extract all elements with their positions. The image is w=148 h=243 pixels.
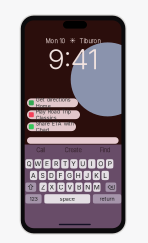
- button[interactable]: ⌫: [105, 182, 116, 192]
- staticText: 9:41: [48, 42, 98, 76]
- staticText: Play Road Trip Classics: [36, 108, 71, 121]
- button[interactable]: space: [44, 194, 90, 203]
- staticText: T: [63, 160, 67, 168]
- button[interactable]: H: [75, 171, 82, 180]
- button[interactable]: B: [75, 182, 83, 192]
- button[interactable]: Share ETA with Chad: [27, 122, 76, 131]
- button[interactable]: J: [84, 171, 91, 180]
- button[interactable]: 123: [25, 194, 42, 203]
- button[interactable]: W: [34, 159, 42, 168]
- button[interactable]: I: [88, 159, 95, 168]
- staticText: C: [58, 183, 63, 191]
- staticText: S: [40, 171, 44, 179]
- staticText: N: [85, 183, 90, 191]
- button[interactable]: Play Road Trip Classics: [27, 110, 80, 119]
- staticText: O: [98, 160, 103, 168]
- button[interactable]: A: [30, 171, 37, 180]
- button[interactable]: K: [92, 171, 100, 180]
- staticText: ⌫: [107, 183, 115, 191]
- button[interactable]: D: [48, 171, 55, 180]
- staticText: R: [54, 160, 58, 168]
- staticText: K: [94, 171, 98, 179]
- button[interactable]: ⇧: [25, 182, 36, 192]
- staticText: G: [67, 171, 72, 179]
- staticText: Mon 10 ☀ Tiburon: [45, 37, 100, 45]
- button[interactable]: O: [97, 159, 104, 168]
- staticText: H: [76, 171, 81, 179]
- button[interactable]: U: [79, 159, 86, 168]
- staticText: B: [77, 183, 81, 191]
- staticText: I: [91, 160, 93, 168]
- staticText: P: [108, 160, 112, 168]
- staticText: L: [103, 171, 107, 179]
- button[interactable]: P: [106, 159, 113, 168]
- button[interactable]: V: [66, 182, 74, 192]
- button[interactable]: Q: [25, 159, 33, 168]
- staticText: Z: [41, 183, 45, 191]
- staticText: Share ETA with Chad: [36, 120, 74, 133]
- button[interactable]: return: [93, 194, 121, 203]
- staticText: F: [58, 171, 62, 179]
- staticText: ⇧: [27, 183, 34, 191]
- staticText: M: [94, 183, 100, 191]
- staticText: U: [80, 160, 85, 168]
- button[interactable]: Get directions Home: [27, 98, 78, 107]
- staticText: Call: [36, 146, 45, 154]
- button[interactable]: E: [43, 159, 51, 168]
- staticText: 123: [29, 196, 37, 202]
- staticText: J: [85, 171, 89, 179]
- staticText: Find: [100, 146, 111, 154]
- button[interactable]: X: [48, 182, 56, 192]
- button[interactable]: L: [101, 171, 109, 180]
- staticText: space: [60, 196, 75, 202]
- button[interactable]: C: [57, 182, 65, 192]
- staticText: W: [34, 160, 41, 168]
- staticText: return: [100, 196, 115, 202]
- button[interactable]: Y: [70, 159, 78, 168]
- button[interactable]: Z: [39, 182, 47, 192]
- staticText: Create: [65, 146, 82, 154]
- staticText: E: [45, 160, 49, 168]
- staticText: Get directions Home: [36, 96, 71, 109]
- staticText: D: [49, 171, 54, 179]
- button[interactable]: G: [66, 171, 73, 180]
- button[interactable]: T: [61, 159, 69, 168]
- staticText: Q: [27, 160, 32, 168]
- button[interactable]: R: [52, 159, 60, 168]
- button[interactable]: N: [84, 182, 92, 192]
- staticText: X: [49, 183, 54, 191]
- staticText: V: [67, 183, 72, 191]
- staticText: Y: [71, 160, 76, 168]
- button[interactable]: M: [93, 182, 100, 192]
- button[interactable]: F: [57, 171, 64, 180]
- button[interactable]: S: [39, 171, 46, 180]
- staticText: A: [31, 171, 36, 179]
